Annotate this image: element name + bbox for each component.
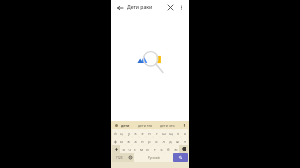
staticText: и [146, 147, 149, 152]
button[interactable]: э [181, 137, 188, 145]
button[interactable]: в [125, 137, 132, 145]
button[interactable]: о [153, 137, 160, 145]
staticText: дети это [138, 123, 153, 128]
button[interactable]: м [138, 145, 144, 153]
button[interactable]: дети [120, 123, 131, 128]
staticText: в [127, 139, 130, 144]
button[interactable]: Emoji [126, 153, 134, 162]
button[interactable]: дети это [137, 123, 154, 128]
staticText: дети что [160, 123, 175, 128]
button[interactable]: п [139, 137, 146, 145]
button[interactable]: и [144, 145, 151, 153]
staticText: с [134, 147, 136, 152]
button[interactable]: й [112, 129, 118, 137]
staticText: ц [120, 131, 123, 136]
button[interactable]: ц [118, 129, 125, 137]
button[interactable]: н [146, 129, 153, 137]
staticText: м [140, 147, 143, 152]
staticText: п [141, 139, 144, 144]
staticText: я [122, 147, 125, 152]
staticText: ?123 [116, 156, 123, 160]
button[interactable]: Back [114, 2, 125, 13]
button[interactable]: ж [174, 137, 181, 145]
button[interactable]: Русский [134, 153, 173, 162]
staticText: ы [120, 139, 123, 144]
button[interactable]: Clear [165, 2, 176, 13]
button[interactable]: т [151, 145, 158, 153]
button[interactable]: а [132, 137, 139, 145]
button[interactable]: л [160, 137, 167, 145]
button[interactable]: Backspace [179, 145, 188, 153]
staticText: дети [121, 123, 130, 128]
staticText: у [128, 131, 130, 136]
staticText: т [154, 147, 156, 152]
staticText: Русский [148, 156, 160, 160]
button[interactable]: Search [173, 153, 188, 162]
button[interactable]: д [167, 137, 174, 145]
staticText: ю [174, 147, 178, 152]
staticText: ч [128, 147, 131, 152]
staticText: щ [169, 131, 173, 136]
button[interactable]: Shift [112, 145, 120, 153]
button[interactable]: ?123 [112, 153, 126, 162]
button[interactable]: ф [112, 137, 118, 145]
button[interactable]: Voice input [181, 122, 187, 128]
staticText: е [141, 131, 144, 136]
staticText: ь [160, 147, 163, 152]
button[interactable]: ш [160, 129, 167, 137]
staticText: ф [114, 139, 117, 144]
button[interactable]: е [139, 129, 146, 137]
button[interactable]: дети что [159, 123, 176, 128]
staticText: ш [162, 131, 166, 136]
button[interactable]: ч [126, 145, 132, 153]
staticText: б [167, 147, 170, 152]
staticText: х [184, 131, 186, 136]
button[interactable]: р [146, 137, 153, 145]
staticText: о [155, 139, 158, 144]
staticText: э [184, 139, 186, 144]
button[interactable]: ю [172, 145, 179, 153]
staticText: з [177, 131, 179, 136]
button[interactable]: у [125, 129, 132, 137]
staticText: а [134, 139, 137, 144]
button[interactable]: з [174, 129, 181, 137]
staticText: й [114, 131, 117, 136]
staticText: л [162, 139, 165, 144]
staticText: р [148, 139, 151, 144]
staticText: к [134, 131, 137, 136]
button[interactable]: я [120, 145, 126, 153]
staticText: ж [176, 139, 179, 144]
staticText: Дети раки [127, 4, 153, 11]
button[interactable]: Assistant [113, 122, 119, 128]
button[interactable]: к [132, 129, 139, 137]
button[interactable]: г [153, 129, 160, 137]
button[interactable]: щ [167, 129, 174, 137]
staticText: д [169, 139, 172, 144]
button[interactable]: ь [158, 145, 165, 153]
button[interactable]: More options [176, 2, 186, 12]
button[interactable]: б [165, 145, 172, 153]
staticText: н [148, 131, 151, 136]
button[interactable]: с [132, 145, 138, 153]
staticText: г [156, 131, 158, 136]
button[interactable]: х [181, 129, 188, 137]
button[interactable]: ы [118, 137, 125, 145]
